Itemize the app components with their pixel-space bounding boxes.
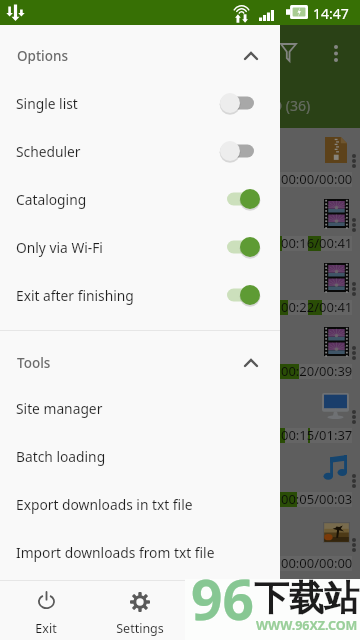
button[interactable]: Import downloads from txt file [0, 528, 280, 576]
button[interactable]: 00:00/00:00 [0, 128, 360, 192]
staticText: 00:00/00:00 [281, 554, 353, 572]
button[interactable]: Single list [0, 79, 280, 127]
staticText: WWW.96XZ.COM [256, 617, 358, 634]
button[interactable]: Exit [1, 582, 91, 640]
button[interactable]: 00:05/00:03 [0, 448, 360, 512]
button[interactable]: Settings [95, 582, 185, 640]
staticText: 00:00/00:00 [281, 618, 353, 636]
button[interactable]: Scheduler [0, 127, 280, 175]
button[interactable]: 00:20/00:39 [0, 320, 360, 384]
staticText: Cataloging [16, 190, 87, 209]
button[interactable]: Site manager [0, 384, 280, 432]
staticText: 00:05/00:03 [281, 490, 353, 508]
staticText: Single list [16, 94, 78, 113]
button[interactable]: Only via Wi-Fi [0, 223, 280, 271]
staticText: Settings [95, 620, 185, 637]
button[interactable]: Exit after finishing [0, 271, 280, 319]
staticText: 00:15/01:37 [281, 426, 353, 444]
button[interactable]: 00:00/00:00 [0, 512, 360, 576]
staticText: Options [17, 47, 69, 65]
button[interactable]: Batch loading [0, 432, 280, 480]
button[interactable]: 00:15/01:37 [0, 384, 360, 448]
button[interactable]: Tools [0, 339, 280, 387]
staticText: Exit [1, 620, 91, 637]
staticText: Batch loading [16, 447, 106, 466]
staticText: Import downloads from txt file [16, 543, 215, 562]
other: Collapse Options [244, 52, 258, 60]
staticText: 00:00/00:00 [281, 170, 353, 188]
other: Collapse Tools [244, 359, 258, 367]
button[interactable]: 00:00/00:00 [0, 576, 360, 640]
staticText: Scheduler [16, 142, 81, 161]
button[interactable]: Options [0, 32, 280, 80]
staticText: 下载站 [254, 576, 359, 620]
staticText: D (36) [272, 96, 311, 115]
staticText: Tools [17, 354, 51, 372]
staticText: Site manager [16, 399, 103, 418]
staticText: 00:20/00:39 [281, 362, 353, 380]
staticText: Exit after finishing [16, 286, 134, 305]
staticText: 14:47 [313, 4, 349, 23]
staticText: 00:16/00:41 [281, 234, 353, 252]
staticText: 00:22/00:41 [281, 298, 353, 316]
button[interactable]: Cataloging [0, 175, 280, 223]
button[interactable]: 00:16/00:41 [0, 192, 360, 256]
staticText: 96 [191, 561, 254, 636]
staticText: Export downloads in txt file [16, 495, 193, 514]
button[interactable]: 00:22/00:41 [0, 256, 360, 320]
staticText: Only via Wi-Fi [16, 238, 103, 257]
other: More options [334, 45, 338, 62]
button[interactable]: Export downloads in txt file [0, 480, 280, 528]
other: Filter [280, 43, 297, 62]
